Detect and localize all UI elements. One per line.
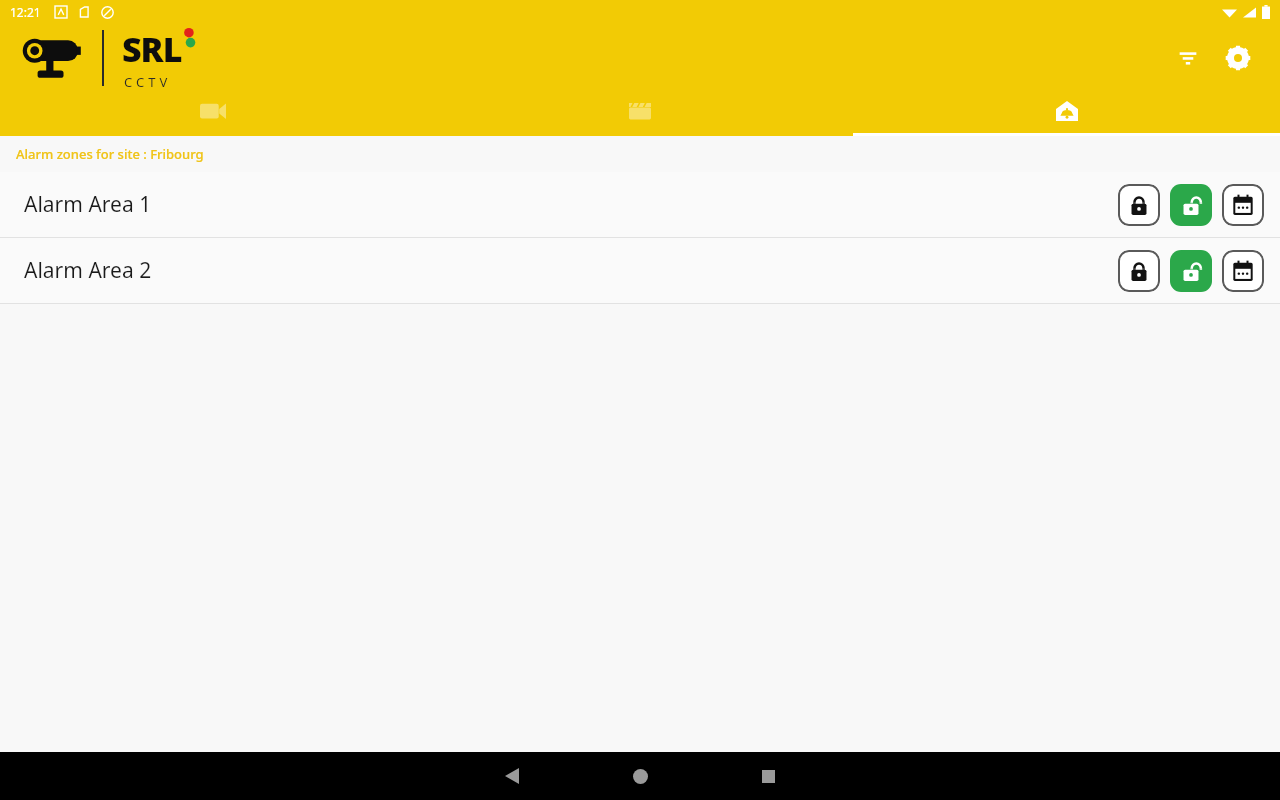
staticText: Alarm Area 2 [24,256,152,285]
staticText: Alarm zones for site : Fribourg [16,145,204,163]
button[interactable]: Disarm zone [1170,184,1212,226]
staticText: SRL [122,26,182,72]
button[interactable]: Home [612,752,668,800]
button[interactable]: Alarm Area 2 [0,238,1280,303]
button[interactable]: Schedule [1222,250,1264,292]
button[interactable]: Live cameras [0,89,426,133]
staticText: Alarm Area 1 [24,190,152,219]
button[interactable]: Arm zone [1118,250,1160,292]
button[interactable]: Arm zone [1118,184,1160,226]
staticText: CCTV [124,73,172,91]
button[interactable]: Schedule [1222,184,1264,226]
button[interactable]: Alarm Area 1 [0,172,1280,237]
button[interactable]: Recordings [426,89,853,133]
button[interactable]: Recent apps [740,752,796,800]
button[interactable]: Back [484,752,540,800]
button[interactable]: Disarm zone [1170,250,1212,292]
button[interactable]: Alarm zones [853,89,1280,133]
staticText: 12:21 [10,4,41,20]
button[interactable]: Settings [1214,34,1262,82]
button[interactable]: Filter [1164,34,1212,82]
